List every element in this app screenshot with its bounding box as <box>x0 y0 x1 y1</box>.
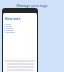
button[interactable] <box>3 31 37 33</box>
staticText: Manage your tags <box>0 3 64 8</box>
button[interactable] <box>3 29 37 31</box>
button[interactable] <box>3 27 37 29</box>
button[interactable]: New note <box>5 17 21 21</box>
button[interactable] <box>3 25 37 27</box>
button[interactable] <box>3 23 37 25</box>
